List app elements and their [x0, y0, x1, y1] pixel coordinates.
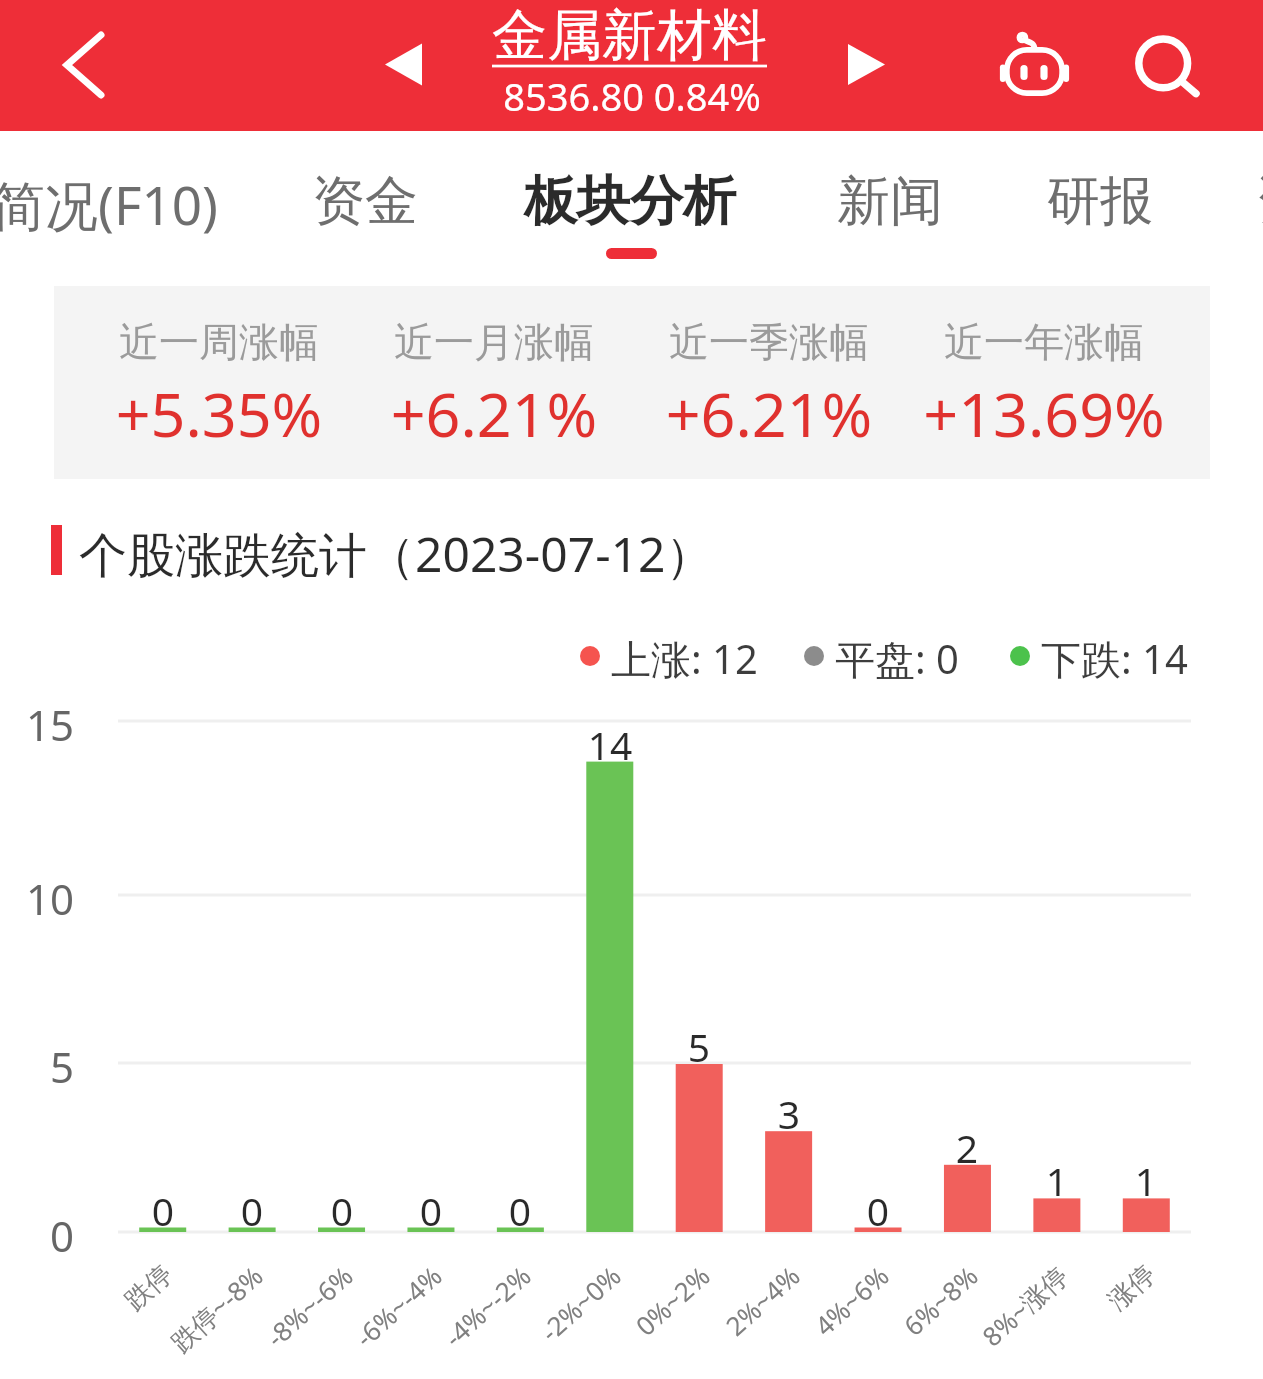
- staticText: 研报: [1047, 168, 1153, 235]
- staticText: 4%~6%: [649, 1258, 895, 1379]
- button[interactable]: 资: [1256, 168, 1263, 235]
- button[interactable]: 新闻: [837, 168, 943, 235]
- staticText: 资: [1256, 168, 1263, 235]
- staticText: 5: [649, 1020, 749, 1073]
- staticText: 0%~2%: [470, 1258, 716, 1379]
- staticText: 简况(F10): [0, 168, 218, 240]
- staticText: -8%~-6%: [113, 1258, 359, 1379]
- staticText: 跌停~-8%: [23, 1258, 270, 1379]
- staticText: 2%~4%: [560, 1258, 806, 1379]
- staticText: 近一季涨幅: [609, 317, 929, 367]
- staticText: +5.35%: [59, 372, 379, 455]
- staticText: 近一年涨幅: [884, 317, 1204, 367]
- staticText: 金属新材料: [492, 1, 767, 70]
- button[interactable]: 下跌: 14: [1010, 631, 1188, 681]
- staticText: 上涨: 12: [611, 631, 758, 681]
- staticText: 0: [292, 1184, 392, 1237]
- staticText: +6.21%: [609, 372, 929, 455]
- button[interactable]: 资金: [312, 168, 418, 235]
- staticText: 14: [560, 718, 660, 771]
- staticText: 平盘: 0: [835, 631, 959, 681]
- staticText: 8536.80 0.84%: [489, 70, 775, 122]
- button[interactable]: Next sector: [828, 23, 904, 105]
- staticText: 0: [828, 1184, 928, 1237]
- button[interactable]: 研报: [1047, 168, 1153, 235]
- button[interactable]: 上涨: 12: [580, 631, 758, 681]
- staticText: 1: [1096, 1154, 1196, 1207]
- staticText: 15: [0, 696, 74, 753]
- staticText: 2: [917, 1121, 1017, 1174]
- button[interactable]: Back: [40, 20, 128, 110]
- staticText: -4%~-2%: [291, 1258, 537, 1379]
- staticText: 下跌: 14: [1041, 631, 1188, 681]
- staticText: 跌停: [0, 1258, 179, 1379]
- staticText: 6%~8%: [738, 1258, 984, 1379]
- staticText: 板块分析: [524, 168, 736, 235]
- staticText: +6.21%: [334, 372, 654, 455]
- button[interactable]: 平盘: 0: [804, 631, 959, 681]
- staticText: 3: [739, 1087, 839, 1140]
- button[interactable]: Previous sector: [365, 23, 441, 105]
- button[interactable]: 简况(F10): [0, 168, 218, 240]
- staticText: +13.69%: [884, 372, 1204, 455]
- staticText: -6%~-4%: [202, 1258, 448, 1379]
- staticText: 资金: [312, 168, 418, 235]
- staticText: 5: [0, 1038, 74, 1095]
- staticText: 1: [1007, 1154, 1107, 1207]
- staticText: -2%~0%: [381, 1258, 627, 1379]
- staticText: 0: [202, 1184, 302, 1237]
- staticText: 个股涨跌统计（2023-07-12）: [79, 521, 714, 587]
- staticText: 10: [0, 870, 74, 927]
- staticText: 0: [470, 1184, 570, 1237]
- staticText: 0: [0, 1207, 74, 1264]
- staticText: 新闻: [837, 168, 943, 235]
- staticText: 0: [381, 1184, 481, 1237]
- staticText: 涨停: [917, 1258, 1162, 1379]
- staticText: 0: [113, 1184, 213, 1237]
- staticText: 8%~涨停: [828, 1258, 1075, 1379]
- staticText: 近一周涨幅: [59, 317, 379, 367]
- staticText: 近一月涨幅: [334, 317, 654, 367]
- button[interactable]: 板块分析: [524, 168, 736, 235]
- button[interactable]: AI assistant: [986, 22, 1084, 110]
- button[interactable]: Search: [1120, 20, 1212, 110]
